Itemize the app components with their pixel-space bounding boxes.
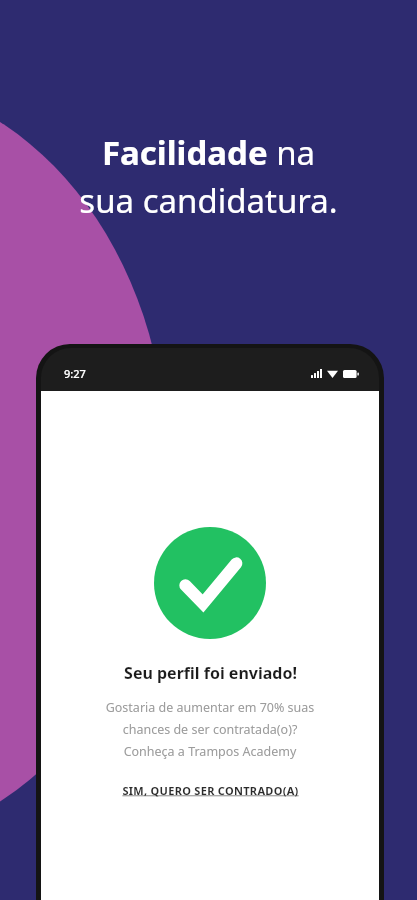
- other: Wi-Fi: [327, 369, 338, 378]
- staticText: 9:27: [64, 366, 86, 381]
- staticText: sua candidatura.: [16, 178, 401, 223]
- staticText: Facilidade na: [16, 130, 401, 175]
- button[interactable]: SIM, QUERO SER CONTRADO(A): [112, 778, 309, 803]
- other: Signal strength: [311, 369, 322, 378]
- other: Battery: [343, 370, 359, 378]
- staticText: SIM, QUERO SER CONTRADO(A): [122, 783, 299, 798]
- staticText: Gostaria de aumentar em 70% suas chances…: [53, 699, 367, 760]
- staticText: Seu perfil foi enviado!: [124, 662, 297, 684]
